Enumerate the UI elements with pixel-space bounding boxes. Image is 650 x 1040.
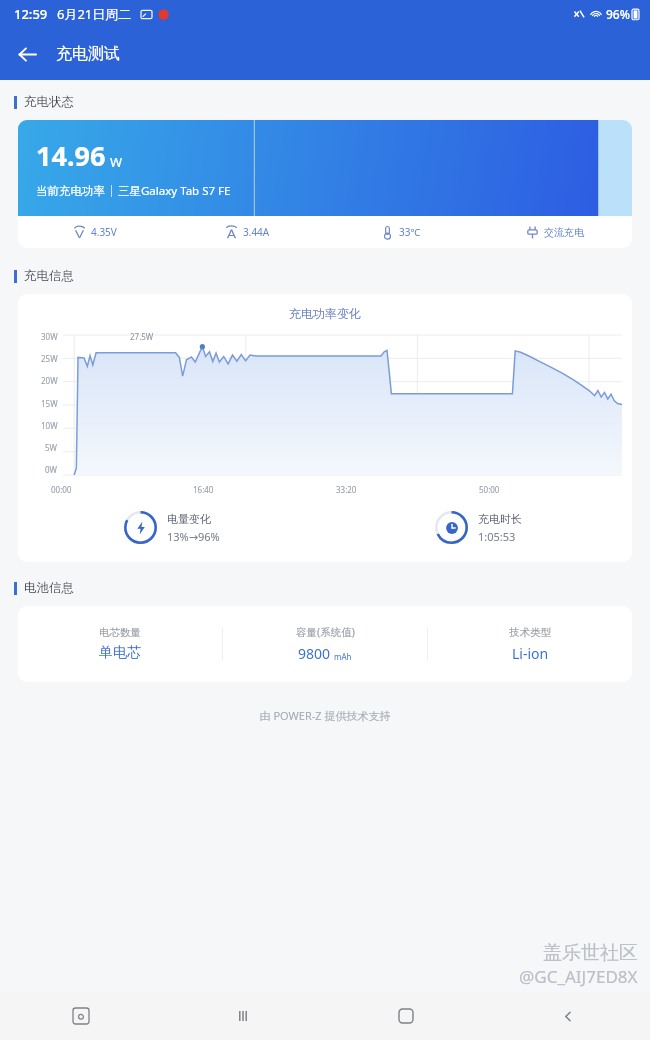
staticText: 盖乐世社区 (543, 941, 638, 965)
staticText: 充电功率变化 (18, 306, 632, 321)
staticText: 10W (41, 420, 58, 431)
staticText: 充电信息 (24, 268, 74, 284)
staticText: 电量变化 (167, 512, 211, 526)
button[interactable]: Menu (162, 992, 324, 1040)
staticText: 00:00 (51, 484, 72, 495)
button[interactable]: Back (487, 992, 650, 1040)
staticText: 6月21日周二 (57, 5, 132, 23)
staticText: 电芯数量 (99, 626, 141, 639)
button[interactable]: Back (6, 33, 48, 75)
staticText: 3.44A (243, 225, 270, 239)
staticText: 容量(系统值) (296, 625, 355, 639)
staticText: @GC_AIJ7ED8X (519, 965, 638, 988)
staticText: 16:40 (193, 484, 214, 495)
staticText: 当前充电功率 (36, 184, 105, 198)
staticText: 9800 (298, 644, 331, 663)
button[interactable]: 充电功率变化 (18, 294, 632, 562)
staticText: 13%→96% (167, 529, 220, 544)
staticText: 5W (45, 442, 58, 453)
staticText: 充电时长 (478, 512, 522, 526)
staticText: 单电芯 (99, 644, 141, 662)
staticText: 96% (606, 6, 630, 22)
button[interactable]: Recents (0, 992, 162, 1040)
staticText: 技术类型 (509, 626, 551, 639)
button[interactable]: 电芯数量 (18, 606, 632, 682)
staticText: 50:00 (479, 484, 500, 495)
staticText: 12:59 (14, 5, 48, 23)
button[interactable]: 14.96 (18, 120, 632, 248)
staticText: 由 POWER-Z 提供技术支持 (0, 708, 650, 723)
button[interactable]: Home (324, 992, 487, 1040)
staticText: 1:05:53 (478, 529, 516, 544)
staticText: 33℃ (399, 225, 421, 239)
staticText: 0W (45, 464, 58, 475)
staticText: 4.35V (91, 225, 117, 239)
staticText: 充电测试 (56, 44, 120, 64)
staticText: 电池信息 (24, 580, 74, 596)
staticText: 25W (41, 353, 58, 364)
staticText: 交流充电 (544, 226, 584, 239)
staticText: Li-ion (512, 644, 549, 663)
staticText: W (110, 153, 123, 171)
staticText: 充电状态 (24, 94, 74, 110)
staticText: 15W (41, 398, 58, 409)
staticText: 20W (41, 375, 58, 386)
staticText: 30W (41, 331, 58, 342)
staticText: mAh (334, 651, 352, 662)
staticText: 27.5W (130, 331, 154, 342)
staticText: 33:20 (336, 484, 357, 495)
staticText: 14.96 (36, 137, 106, 174)
staticText: 三星Galaxy Tab S7 FE (118, 183, 231, 199)
